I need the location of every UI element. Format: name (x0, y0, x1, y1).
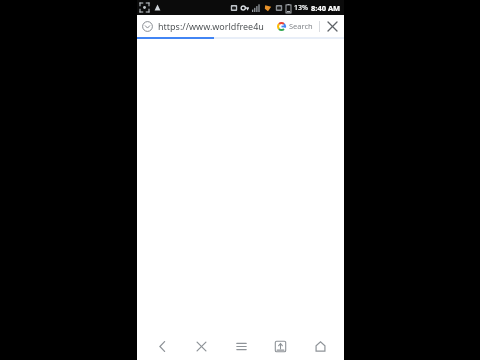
button[interactable]: Site information (141, 20, 154, 33)
button[interactable]: https://www.worldfree4u (158, 20, 275, 32)
staticText: Search (289, 21, 313, 31)
staticText: 13% (294, 3, 308, 13)
button[interactable]: Stop (186, 333, 216, 359)
button[interactable]: Tabs (265, 333, 295, 359)
button[interactable]: Menu (226, 333, 256, 359)
button[interactable]: Stop loading (324, 18, 340, 34)
staticText: 8:40 AM (311, 3, 341, 13)
button[interactable]: Home (305, 333, 335, 359)
button[interactable]: Search (275, 21, 315, 31)
button[interactable]: Back (147, 333, 177, 359)
